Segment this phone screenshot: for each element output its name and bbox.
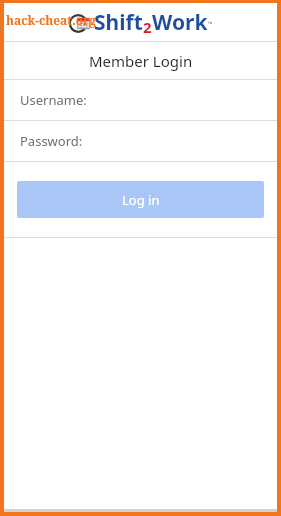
- button[interactable]: Username:: [4, 80, 277, 120]
- staticText: ™: [208, 20, 213, 28]
- staticText: Password:: [20, 132, 83, 150]
- staticText: Shift: [94, 8, 143, 37]
- staticText: Member Login: [89, 51, 193, 71]
- staticText: hack-cheat.org: [6, 12, 97, 28]
- other: Shift2Work logo: [69, 12, 91, 34]
- button[interactable]: Password:: [4, 121, 277, 161]
- staticText: Work: [152, 8, 208, 37]
- staticText: Username:: [20, 91, 87, 109]
- button[interactable]: Log in: [17, 181, 264, 218]
- staticText: Log in: [122, 191, 160, 209]
- staticText: 2: [143, 17, 152, 37]
